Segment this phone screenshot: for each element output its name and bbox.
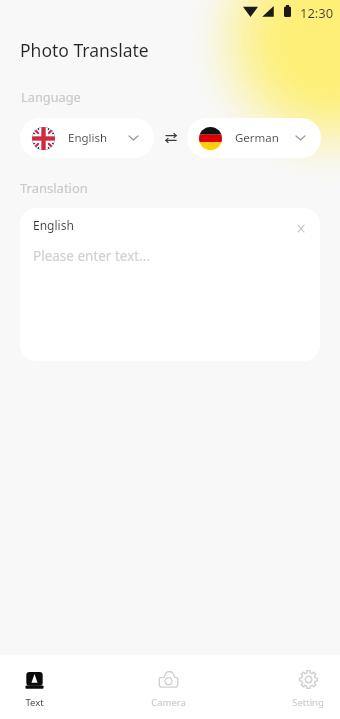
button[interactable]: Swap languages <box>154 118 187 158</box>
button[interactable]: Camera <box>149 666 188 709</box>
staticText: Text <box>25 696 44 709</box>
button[interactable]: English <box>20 118 154 158</box>
staticText: Please enter text... <box>33 247 151 265</box>
staticText: Photo Translate <box>20 38 149 62</box>
staticText: 12:30 <box>300 4 334 22</box>
staticText: Language <box>21 88 81 105</box>
staticText: English <box>33 217 74 233</box>
staticText: Camera <box>151 696 186 709</box>
staticText: English <box>68 130 108 146</box>
staticText: Setting <box>292 696 324 709</box>
button[interactable]: Setting <box>290 666 326 709</box>
staticText: Translation <box>20 179 88 197</box>
button[interactable]: German <box>187 118 321 158</box>
button[interactable]: Text <box>22 666 47 709</box>
staticText: German <box>235 130 279 146</box>
button[interactable]: Clear text <box>292 219 310 237</box>
